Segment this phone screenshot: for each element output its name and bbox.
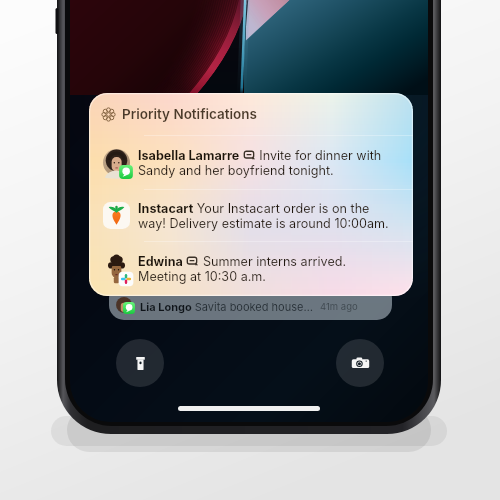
button[interactable]: Flashlight (116, 339, 164, 387)
staticText: Priority Notifications (122, 106, 257, 122)
button[interactable]: Lia Longo Savita booked house… (109, 283, 392, 320)
staticText: Lia Longo Savita booked house… (140, 300, 313, 313)
button[interactable]: Edwina ↩ Summer interns arrived. Meeting… (89, 242, 413, 296)
button[interactable]: Isabella Lamarre ↩ Invite for dinner wit… (89, 136, 413, 189)
staticText: Edwina ↩ Summer interns arrived. Meeting… (138, 254, 396, 284)
button[interactable]: Priority Notifications (89, 93, 413, 296)
button[interactable]: Instacart Your Instacart order is on the… (89, 190, 413, 241)
staticText: 41m ago (320, 301, 358, 312)
button[interactable]: Camera (336, 339, 384, 387)
staticText: Isabella Lamarre ↩ Invite for dinner wit… (138, 148, 396, 178)
staticText: Instacart Your Instacart order is on the… (138, 201, 396, 231)
